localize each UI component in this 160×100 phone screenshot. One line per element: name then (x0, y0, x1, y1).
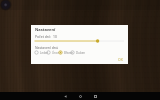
button[interactable]: OK (115, 56, 126, 63)
button[interactable]: Home (73, 92, 88, 100)
staticText: Duben (76, 51, 86, 55)
staticText: Počet dní: (35, 34, 51, 39)
staticText: Nastavení dnů (35, 45, 58, 50)
staticText: OK (118, 57, 123, 62)
button[interactable]: Back (58, 92, 73, 100)
button[interactable]: Account (0, 0, 12, 11)
button[interactable]: Leden (34, 50, 49, 55)
staticText: Březen (64, 51, 74, 55)
button[interactable]: Duben (70, 50, 86, 55)
button[interactable] (33, 39, 126, 43)
staticText: Leden (40, 51, 49, 55)
button[interactable]: Únor (46, 50, 59, 55)
staticText: 10 (53, 34, 57, 39)
staticText: Nastavení (35, 27, 56, 32)
button[interactable]: Březen (58, 50, 74, 55)
button[interactable]: Recent apps (88, 92, 103, 100)
staticText: Únor (52, 51, 59, 55)
